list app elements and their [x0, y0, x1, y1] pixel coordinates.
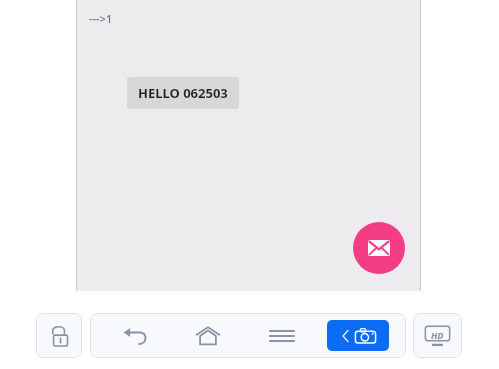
- button[interactable]: Unlock: [36, 313, 82, 358]
- button[interactable]: Camera: [327, 320, 389, 351]
- button[interactable]: Back: [107, 313, 163, 358]
- button[interactable]: HELLO 062503: [127, 77, 239, 109]
- staticText: HD: [431, 329, 444, 341]
- staticText: --->1: [89, 11, 113, 26]
- staticText: HELLO 062503: [138, 84, 228, 102]
- button[interactable]: Menu: [254, 313, 310, 358]
- button[interactable]: HD quality: [413, 313, 462, 358]
- button[interactable]: Home: [180, 313, 236, 358]
- button[interactable]: Compose message: [353, 222, 405, 274]
